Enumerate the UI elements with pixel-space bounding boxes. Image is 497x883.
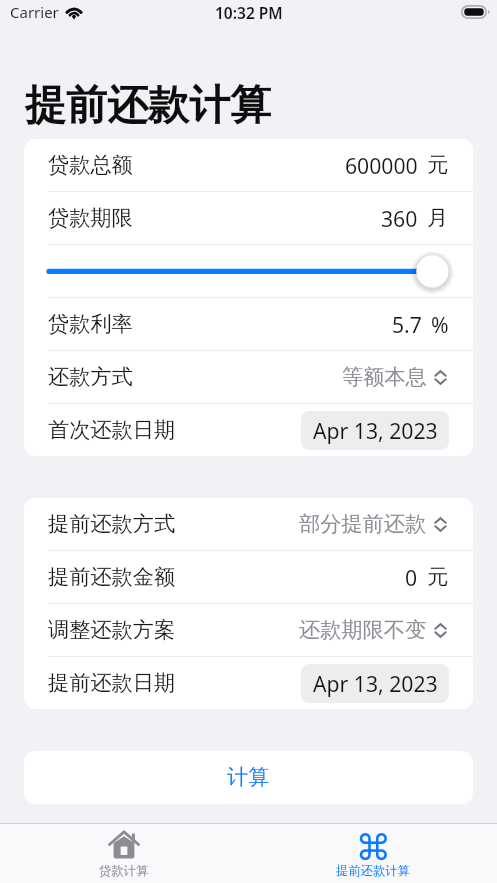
button[interactable]: 贷款期限 [24,192,473,244]
staticText: 部分提前还款 [299,511,427,538]
button[interactable]: 提前还款日期 [24,657,473,709]
staticText: 提前还款方式 [48,511,176,538]
staticText: 元 [427,152,449,179]
staticText: ⌘ [358,819,389,878]
staticText: 月 [427,205,449,232]
staticText: 提前还款计算 [25,80,271,132]
staticText: 10:32 PM [215,2,283,23]
button[interactable]: 首次还款日期 [24,404,473,456]
staticText: 提前还款金额 [48,564,176,591]
button[interactable]: Apr 13, 2023 [301,664,449,703]
staticText: 0 [405,563,418,592]
staticText: 调整还款方案 [48,617,176,644]
staticText: 贷款计算 [99,863,149,878]
staticText: 等额本息 [342,364,427,391]
staticText: Carrier [10,2,59,22]
staticText: 贷款利率 [48,311,133,338]
staticText: 600000 [345,151,418,180]
staticText: 元 [427,564,449,591]
staticText: 计算 [227,764,270,791]
button[interactable]: 调整还款方案 [24,604,473,656]
staticText: 提前还款计算 [336,863,410,878]
button[interactable]: Loan term slider [24,245,473,297]
staticText: Apr 13, 2023 [313,416,438,445]
staticText: % [431,310,449,339]
button[interactable]: Apr 13, 2023 [301,411,449,450]
staticText: 360 [381,204,418,233]
staticText: 还款期限不变 [299,617,427,644]
button[interactable]: 还款方式 [24,351,473,403]
staticText: 贷款期限 [48,205,133,232]
staticText: 还款方式 [48,364,133,391]
staticText: 提前还款日期 [48,670,176,697]
staticText: 贷款总额 [48,152,133,179]
button[interactable]: 提前还款金额 [24,551,473,603]
button[interactable]: ⌘ [248,824,497,883]
staticText: 5.7 [392,310,422,339]
staticText: 首次还款日期 [48,417,176,444]
button[interactable]: 贷款总额 [24,139,473,191]
staticText: Apr 13, 2023 [313,669,438,698]
button[interactable]: 贷款计算 [0,824,248,883]
button[interactable]: 提前还款方式 [24,498,473,550]
button[interactable]: 计算 [24,751,473,804]
button[interactable]: 贷款利率 [24,298,473,350]
